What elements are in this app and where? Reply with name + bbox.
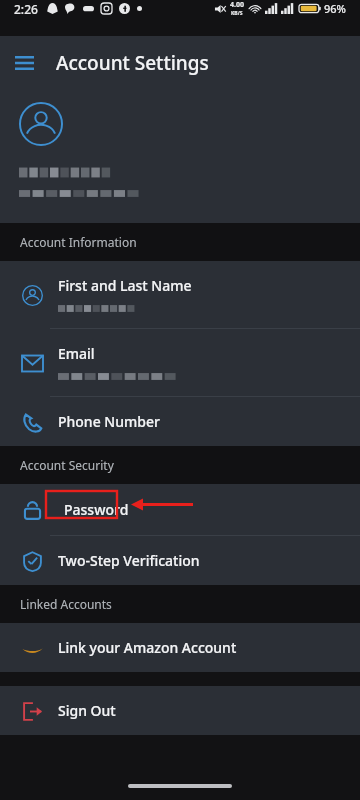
button[interactable]: Password	[0, 484, 360, 536]
staticText: Email	[58, 344, 95, 363]
staticText: Phone Number	[58, 412, 160, 431]
staticText: Account Information	[20, 234, 137, 250]
button[interactable]: Two-Step Verification	[0, 536, 360, 585]
button[interactable]: Open navigation menu	[8, 47, 40, 79]
staticText: Account Security	[20, 457, 114, 473]
staticText: Link your Amazon Account	[58, 638, 237, 657]
staticText: 96%	[324, 1, 346, 16]
staticText: Linked Accounts	[20, 596, 112, 612]
button[interactable]: Sign Out	[0, 686, 360, 735]
button[interactable]: First and Last Name	[0, 261, 360, 329]
staticText: First and Last Name	[58, 276, 192, 295]
button[interactable]: Email	[0, 329, 360, 397]
button[interactable]: Link your Amazon Account	[0, 623, 360, 672]
button[interactable]: Phone Number	[0, 397, 360, 446]
staticText: Account Settings	[56, 50, 209, 76]
staticText: 4.00	[230, 0, 244, 10]
staticText: KB/S	[231, 10, 243, 17]
staticText: Two-Step Verification	[58, 551, 200, 570]
staticText: Password	[64, 500, 129, 519]
staticText: 2:26	[14, 1, 38, 17]
staticText: Sign Out	[58, 701, 116, 720]
